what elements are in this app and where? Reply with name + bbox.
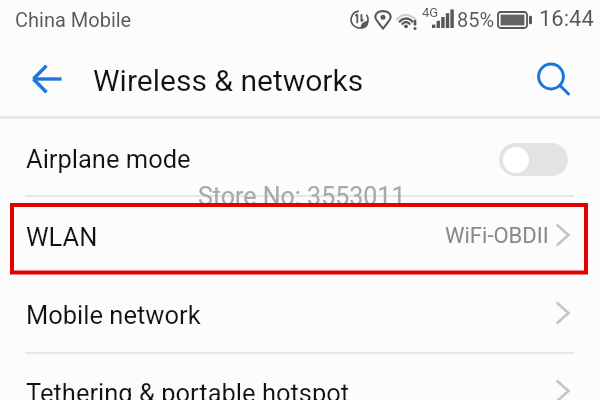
button[interactable]: Airplane mode switch, off — [499, 143, 568, 176]
staticText: Mobile network — [26, 300, 201, 330]
button[interactable]: Airplane mode — [0, 118, 600, 196]
other: Wi-Fi connected, no internet — [392, 6, 420, 32]
button[interactable]: Tethering & portable hotspot — [0, 352, 600, 400]
other: Data saver — [348, 8, 372, 32]
staticText: Wireless & networks — [93, 63, 364, 98]
staticText: Airplane mode — [26, 144, 191, 174]
staticText: China Mobile — [15, 8, 132, 31]
staticText: 85% — [457, 8, 495, 31]
staticText: WiFi-OBDII — [445, 223, 549, 249]
other: Location on — [373, 10, 393, 30]
other: Battery 85 percent — [497, 11, 533, 29]
button[interactable]: Back — [14, 50, 66, 102]
staticText: Store No: 3553011 — [198, 182, 406, 211]
other: Mobile signal full — [430, 8, 456, 30]
button[interactable]: WLAN — [0, 196, 600, 274]
staticText: Tethering & portable hotspot — [26, 378, 350, 400]
button[interactable]: Search — [526, 50, 576, 100]
button[interactable]: Mobile network — [0, 274, 600, 352]
staticText: WLAN — [26, 222, 98, 252]
staticText: 4G — [422, 5, 439, 20]
staticText: 16:44 — [539, 6, 594, 32]
